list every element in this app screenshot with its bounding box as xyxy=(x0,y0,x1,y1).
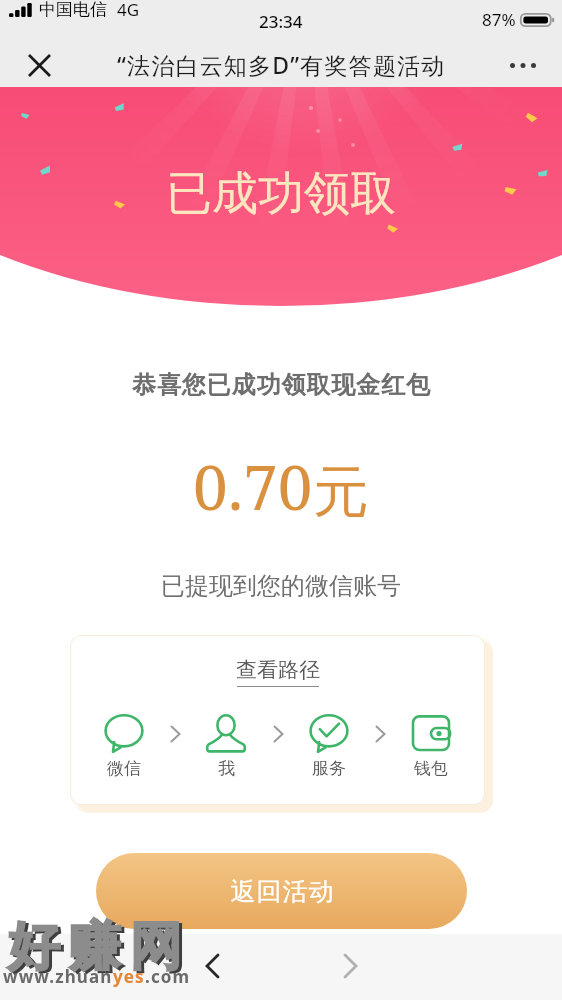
staticText: 返回活动 xyxy=(230,876,334,907)
staticText: 钱包 xyxy=(414,758,448,779)
staticText: .com xyxy=(145,965,191,988)
staticText: 已提现到您的微信账号 xyxy=(161,571,401,601)
staticText: 元 xyxy=(313,457,369,528)
staticText: 我 xyxy=(218,758,235,779)
staticText: “法治白云知多D”有奖答题活动 xyxy=(117,49,446,80)
staticText: 已成功领取 xyxy=(166,165,396,223)
button[interactable]: 查看路径 xyxy=(70,635,485,805)
staticText: www.zhuan xyxy=(3,965,113,988)
button[interactable]: 返回活动 xyxy=(96,853,467,929)
staticText: 4G xyxy=(117,0,140,21)
staticText: 87% xyxy=(482,8,516,31)
staticText: 中国电信 xyxy=(39,0,107,20)
staticText: 0.70 xyxy=(193,444,313,528)
staticText: 查看路径 xyxy=(236,657,320,683)
staticText: 恭喜您已成功领取现金红包 xyxy=(132,370,431,400)
staticText: 服务 xyxy=(312,758,346,779)
button[interactable]: More options xyxy=(502,44,544,86)
button[interactable]: Back xyxy=(190,944,234,988)
staticText: yes xyxy=(113,965,145,988)
staticText: 好赚网 xyxy=(3,914,186,980)
staticText: 好赚网 xyxy=(6,916,189,982)
button[interactable]: Forward xyxy=(328,944,372,988)
staticText: 微信 xyxy=(107,758,141,779)
button[interactable]: Close xyxy=(18,44,60,86)
staticText: 23:34 xyxy=(259,10,303,33)
